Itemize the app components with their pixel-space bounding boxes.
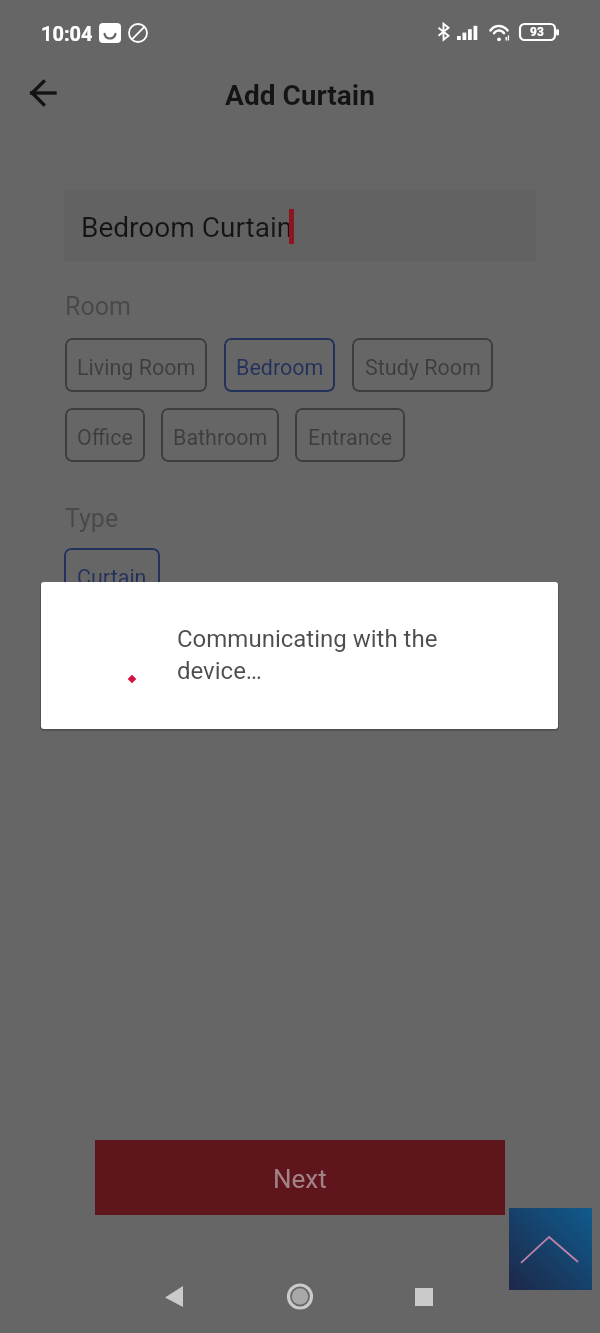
staticText: Type: [65, 504, 119, 533]
button[interactable]: Entrance: [295, 408, 405, 462]
button[interactable]: Back: [140, 1272, 200, 1322]
staticText: Room: [65, 292, 131, 321]
button[interactable]: Next: [95, 1140, 505, 1215]
button[interactable]: Recents: [394, 1272, 454, 1322]
button[interactable]: Living Room: [65, 338, 207, 392]
staticText: Office: [77, 425, 133, 450]
staticText: Bedroom: [236, 355, 324, 380]
staticText: Curtain: [77, 565, 147, 590]
staticText: Bedroom Curtain: [81, 211, 293, 244]
button[interactable]: Bathroom: [161, 408, 279, 462]
staticText: Bathroom: [173, 425, 268, 450]
staticText: Communicating with the device…: [177, 625, 449, 685]
button[interactable]: Expand overlay: [509, 1208, 592, 1290]
staticText: Entrance: [308, 425, 393, 450]
button[interactable]: Curtain: [64, 548, 160, 602]
staticText: Next: [273, 1164, 327, 1194]
staticText: Living Room: [77, 355, 196, 380]
button[interactable]: Bedroom Curtain: [64, 190, 536, 261]
button[interactable]: Back: [19, 69, 67, 117]
button[interactable]: Bedroom: [224, 338, 335, 392]
button[interactable]: Study Room: [352, 338, 493, 392]
button[interactable]: Home: [270, 1272, 330, 1322]
staticText: Study Room: [365, 355, 481, 380]
staticText: 93: [530, 25, 544, 39]
staticText: Add Curtain: [0, 79, 600, 112]
button[interactable]: Office: [65, 408, 145, 462]
staticText: 10:04: [41, 22, 93, 45]
